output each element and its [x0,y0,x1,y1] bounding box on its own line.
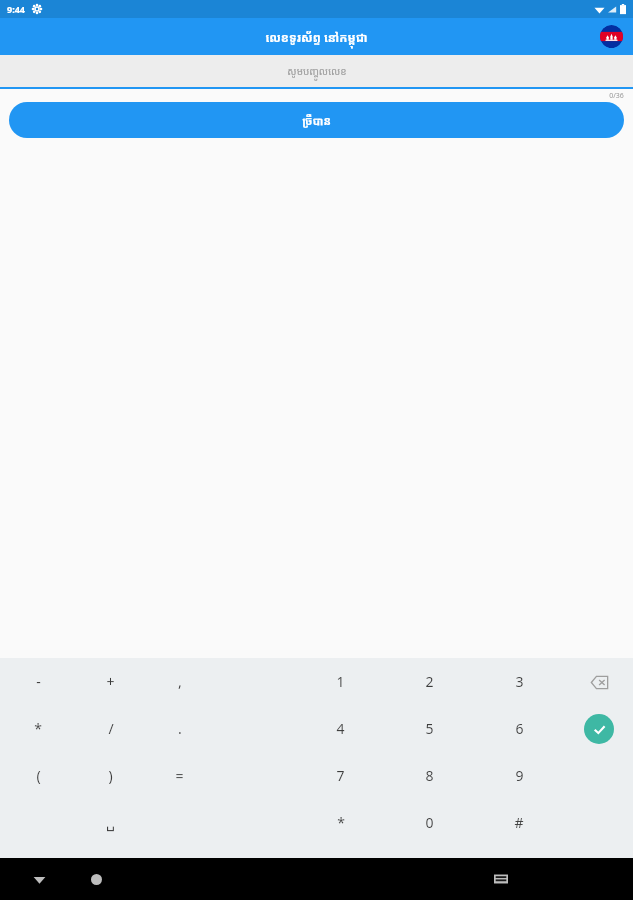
button[interactable]: 4 [297,705,384,752]
button[interactable]: # [474,799,564,846]
staticText: 9:44 [7,3,25,15]
staticText: 0 [425,813,434,832]
staticText: 5 [425,719,434,738]
button[interactable]: * [297,799,384,846]
button[interactable]: - [0,658,76,705]
button[interactable]: ␣ [76,799,145,846]
staticText: 9 [515,766,524,785]
staticText: 8 [425,766,434,785]
button[interactable]: Back [22,862,56,896]
button[interactable]: 7 [297,752,384,799]
staticText: = [175,766,184,785]
staticText: 0/36 [609,91,624,101]
staticText: - [36,672,41,691]
button[interactable]: ច្រឹបាន [9,102,624,138]
staticText: 3 [515,672,524,691]
button[interactable]: 9 [474,752,564,799]
staticText: / [108,719,114,738]
staticText: ច្រឹបាន [302,113,331,128]
button[interactable]: 5 [384,705,474,752]
button[interactable]: 3 [474,658,564,705]
button[interactable]: . [145,705,214,752]
staticText: ␣ [106,815,115,831]
button[interactable]: + [76,658,145,705]
staticText: + [106,672,115,691]
staticText: លេខទូរស័ព្ទ នៅកម្ពុជា [265,29,368,45]
staticText: 7 [336,766,345,785]
staticText: . [178,719,182,738]
staticText: * [34,719,42,738]
button[interactable]: Backspace [584,667,614,697]
button[interactable]: Cambodia flag [600,25,623,48]
button[interactable]: 1 [297,658,384,705]
button[interactable]: សូមបញ្ចូលលេខ [0,55,633,87]
button[interactable]: Enter [584,714,614,744]
staticText: 1 [336,672,345,691]
staticText: 2 [425,672,434,691]
button[interactable]: 0 [384,799,474,846]
button[interactable]: * [0,705,76,752]
button[interactable]: = [145,752,214,799]
button[interactable]: 2 [384,658,474,705]
staticText: 6 [515,719,524,738]
button[interactable]: , [145,658,214,705]
button[interactable]: Keyboard [484,862,518,896]
button[interactable]: Home [79,862,113,896]
button[interactable]: 8 [384,752,474,799]
staticText: * [337,813,345,832]
staticText: ) [108,766,113,785]
button[interactable]: ( [0,752,76,799]
staticText: # [514,813,524,832]
button[interactable]: / [76,705,145,752]
staticText: 4 [336,719,345,738]
button[interactable]: 6 [474,705,564,752]
staticText: ( [36,766,41,785]
staticText: សូមបញ្ចូលលេខ [287,64,347,78]
button[interactable]: ) [76,752,145,799]
staticText: , [178,672,182,691]
